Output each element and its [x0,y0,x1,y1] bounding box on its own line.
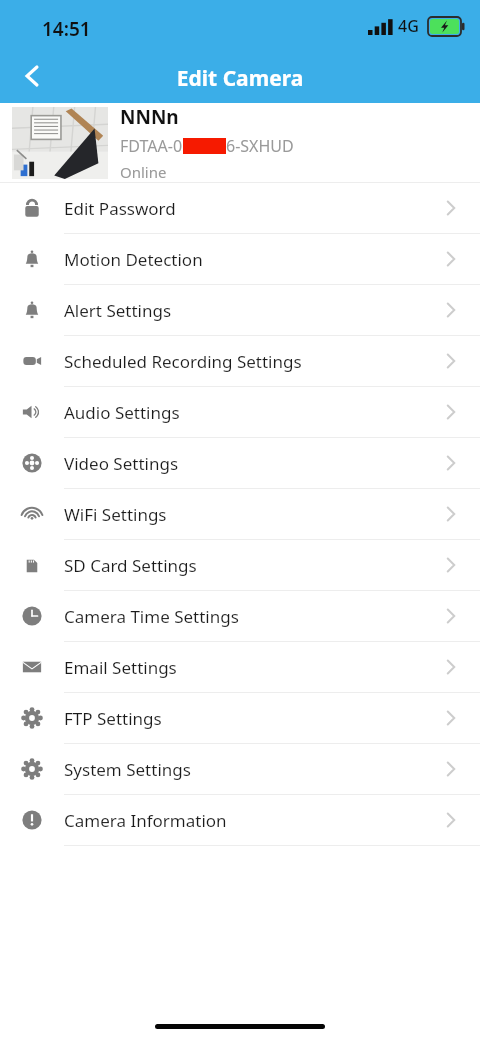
staticText: Camera Time Settings [64,605,239,628]
staticText: 14:51 [42,16,91,42]
staticText: NNNn [120,104,179,130]
staticText: 6-SXHUD [226,135,294,157]
staticText: Edit Password [64,197,176,220]
button[interactable]: FTP Settings [0,693,480,743]
staticText: Online [120,162,167,182]
button[interactable]: Alert Settings [0,285,480,335]
staticText: WiFi Settings [64,503,167,526]
staticText: Video Settings [64,452,179,475]
staticText: Scheduled Recording Settings [64,350,302,373]
staticText: System Settings [64,758,191,781]
staticText: FDTAA-0 [120,135,183,157]
button[interactable]: NNNn [0,103,480,182]
button[interactable]: Video Settings [0,438,480,488]
button[interactable]: Camera Time Settings [0,591,480,641]
staticText: FTP Settings [64,707,162,730]
button[interactable]: Scheduled Recording Settings [0,336,480,386]
staticText: Alert Settings [64,299,172,322]
button[interactable]: Email Settings [0,642,480,692]
button[interactable]: WiFi Settings [0,489,480,539]
staticText: SD Card Settings [64,554,197,577]
staticText: Edit Camera [0,64,480,93]
button[interactable]: Camera Information [0,795,480,845]
button[interactable]: Audio Settings [0,387,480,437]
button[interactable]: System Settings [0,744,480,794]
button[interactable]: Back [8,54,54,98]
button[interactable]: Motion Detection [0,234,480,284]
staticText: Email Settings [64,656,177,679]
staticText: Motion Detection [64,248,203,271]
button[interactable]: SD Card Settings [0,540,480,590]
staticText: Camera Information [64,809,227,832]
staticText: 4G [398,15,419,37]
button[interactable]: Edit Password [0,183,480,233]
staticText: Audio Settings [64,401,180,424]
